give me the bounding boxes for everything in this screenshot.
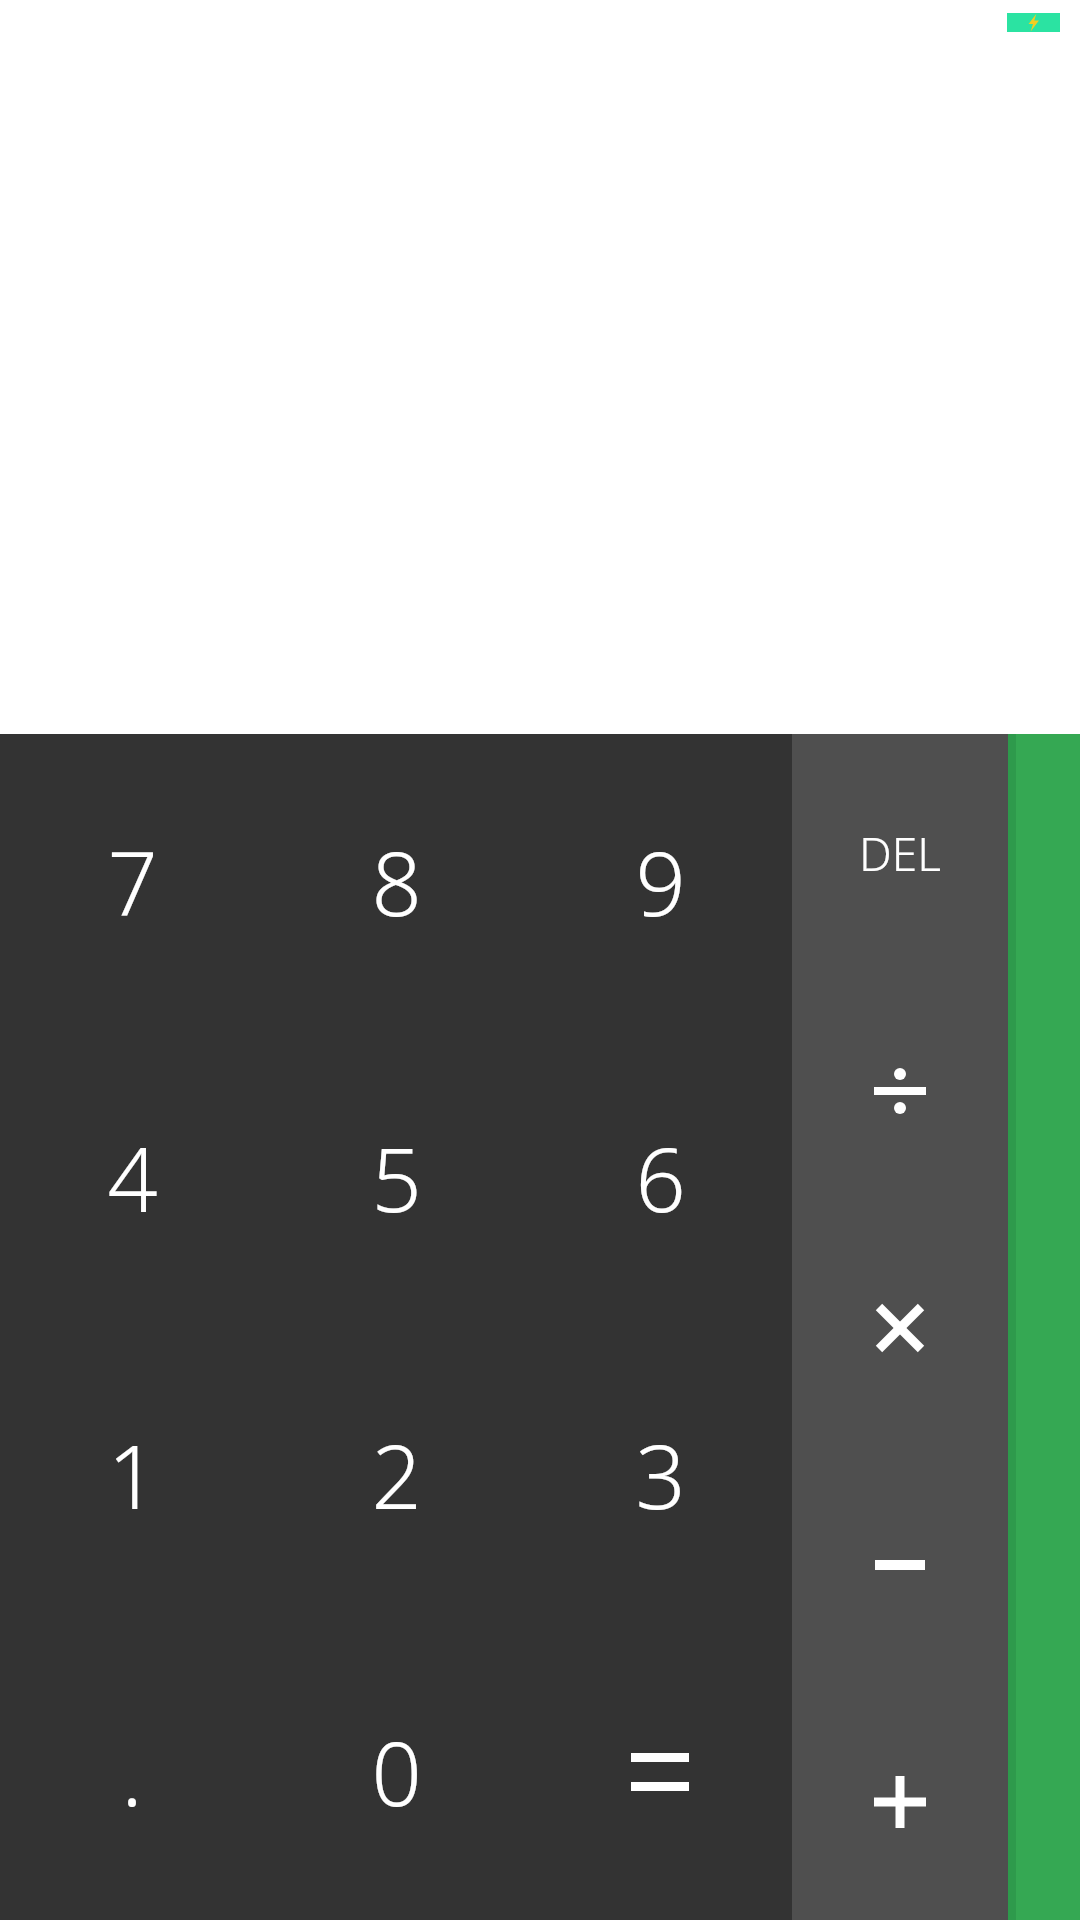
button[interactable]: 0 [264,1623,528,1920]
staticText: 6 [635,1118,686,1238]
staticText: 0 [371,1712,422,1832]
button[interactable]: Equals [528,1623,792,1920]
button[interactable]: 8 [264,734,528,1030]
staticText: 9 [635,822,686,942]
button[interactable]: 5 [264,1030,528,1326]
button[interactable]: Add [792,1683,1008,1920]
button[interactable]: 9 [528,734,792,1030]
button[interactable]: 3 [528,1326,792,1623]
staticText: 7 [107,822,158,942]
staticText: DEL [859,822,941,885]
button[interactable]: . [0,1623,264,1920]
staticText: 5 [371,1118,422,1238]
button[interactable]: DEL [792,734,1008,972]
button[interactable]: 6 [528,1030,792,1326]
button[interactable]: Clear [1008,734,1080,1920]
button[interactable]: Divide [792,972,1008,1209]
button[interactable]: Charging [1007,13,1060,32]
button[interactable]: 1 [0,1326,264,1623]
staticText: . [121,1712,143,1832]
staticText: 3 [635,1415,686,1535]
button[interactable]: 7 [0,734,264,1030]
staticText: 1 [107,1415,158,1535]
staticText: 8 [371,822,422,942]
button[interactable]: 4 [0,1030,264,1326]
button[interactable]: Subtract [792,1446,1008,1683]
staticText: 2 [371,1415,422,1535]
button[interactable]: 2 [264,1326,528,1623]
staticText: 4 [107,1118,158,1238]
button[interactable]: Multiply [792,1209,1008,1446]
